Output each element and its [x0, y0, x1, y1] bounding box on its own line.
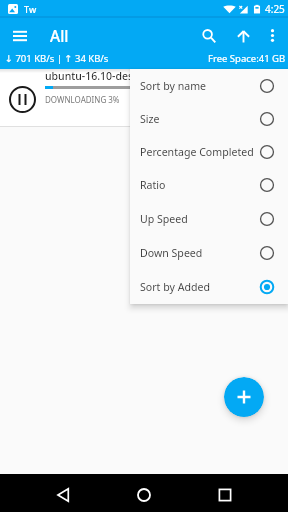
- staticText: Percentage Completed: [140, 145, 260, 159]
- button[interactable]: Recents: [206, 474, 244, 512]
- button[interactable]: More options: [257, 20, 288, 51]
- staticText: Tw: [24, 3, 37, 15]
- button[interactable]: Back: [44, 474, 82, 512]
- button[interactable]: Sort by name: [130, 69, 288, 102]
- staticText: Ratio: [140, 178, 260, 192]
- button[interactable]: Open navigation drawer: [4, 20, 36, 52]
- button[interactable]: Pause: [0, 69, 45, 126]
- button[interactable]: Sort direction: [227, 20, 259, 52]
- staticText: Down Speed: [140, 246, 260, 260]
- button[interactable]: Search: [193, 20, 225, 52]
- staticText: Free Space:41 GB: [208, 52, 286, 65]
- staticText: All: [50, 25, 69, 46]
- button[interactable]: Up Speed: [130, 202, 288, 236]
- staticText: ubuntu-16.10-desktop-amd64.iso: [45, 69, 211, 83]
- staticText: DOWNLOADING 3%: [45, 94, 120, 105]
- button[interactable]: Sort by Added: [130, 270, 288, 304]
- button[interactable]: Percentage Completed: [130, 135, 288, 168]
- button[interactable]: Pause: [0, 69, 288, 126]
- button[interactable]: Home: [125, 474, 163, 512]
- staticText: 4:25: [265, 2, 285, 16]
- button[interactable]: Size: [130, 102, 288, 135]
- staticText: Sort by Added: [140, 280, 260, 294]
- button[interactable]: Down Speed: [130, 236, 288, 270]
- staticText: Size: [140, 112, 260, 126]
- button[interactable]: Add torrent: [224, 377, 264, 417]
- staticText: ↓ 701 KB/s | ↑ 34 KB/s: [5, 52, 109, 65]
- staticText: Sort by name: [140, 79, 260, 93]
- staticText: Up Speed: [140, 212, 260, 226]
- button[interactable]: Ratio: [130, 168, 288, 202]
